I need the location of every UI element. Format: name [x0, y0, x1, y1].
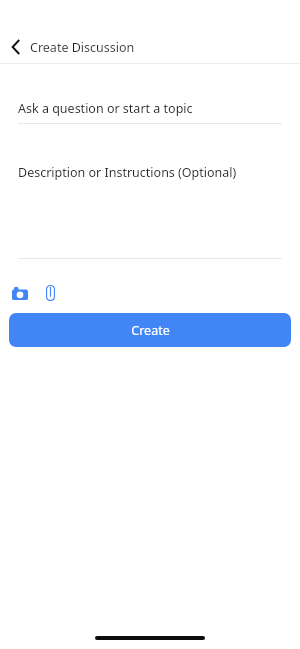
button[interactable]: Attach file [41, 284, 59, 302]
button[interactable]: Description or Instructions (Optional) [18, 161, 282, 183]
button[interactable]: Ask a question or start a topic [18, 97, 282, 119]
staticText: Create [131, 322, 170, 339]
staticText: Create Discussion [30, 39, 135, 56]
staticText: Description or Instructions (Optional) [18, 164, 237, 181]
button[interactable]: Create [9, 313, 291, 347]
button[interactable]: Back [6, 37, 26, 57]
button[interactable]: Add photo [11, 285, 28, 302]
staticText: Ask a question or start a topic [18, 100, 193, 117]
